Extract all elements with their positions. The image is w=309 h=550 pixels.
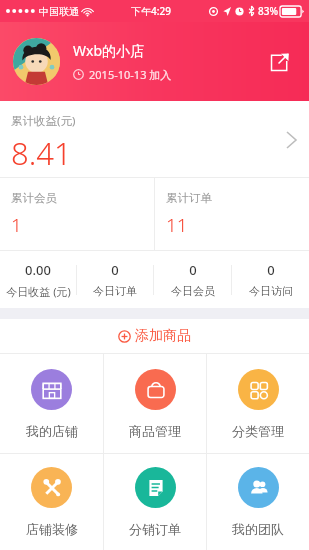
staticText: 中国联通 [39, 5, 79, 18]
staticText: 商品管理 [129, 423, 181, 439]
staticText: 今日收益 (元) [6, 284, 71, 299]
staticText: 11 [166, 212, 188, 238]
button[interactable]: 累计会员 [0, 178, 154, 250]
button[interactable]: 分类管理 [207, 354, 309, 453]
staticText: 我的团队 [232, 521, 284, 537]
button[interactable]: 商品管理 [104, 354, 206, 453]
staticText: 2015-10-13 加入 [89, 67, 172, 82]
staticText: 0.00 [25, 261, 51, 279]
button[interactable]: 分销订单 [104, 454, 206, 550]
staticText: 添加商品 [135, 327, 191, 345]
button[interactable]: 0.00 [0, 251, 76, 308]
button[interactable]: 0 [232, 251, 309, 308]
button[interactable]: 累计订单 [155, 178, 309, 250]
button[interactable]: 我的团队 [207, 454, 309, 550]
button[interactable]: 添加商品 [0, 319, 309, 353]
staticText: 1 [11, 212, 22, 238]
staticText: 分类管理 [232, 423, 284, 439]
staticText: 店铺装修 [26, 521, 78, 537]
staticText: 0 [111, 261, 119, 279]
button[interactable]: Avatar [13, 38, 60, 85]
staticText: 今日访问 [249, 284, 293, 298]
staticText: 今日会员 [171, 284, 215, 298]
button[interactable]: 0 [154, 251, 231, 308]
button[interactable]: 0 [77, 251, 153, 308]
staticText: 分销订单 [129, 521, 181, 537]
staticText: 83% [258, 4, 278, 18]
button[interactable]: Share [259, 42, 299, 82]
button[interactable]: 我的店铺 [0, 354, 103, 453]
staticText: 下午4:29 [131, 4, 171, 18]
staticText: 我的店铺 [26, 423, 78, 439]
staticText: 今日订单 [93, 284, 137, 298]
staticText: 累计订单 [166, 191, 212, 205]
staticText: Wxb的小店 [73, 41, 145, 60]
staticText: 0 [189, 261, 197, 279]
staticText: 累计会员 [11, 191, 57, 205]
button[interactable]: 店铺装修 [0, 454, 103, 550]
staticText: 0 [267, 261, 275, 279]
staticText: 8.41 [11, 132, 72, 174]
button[interactable]: 累计收益(元) [0, 101, 309, 178]
staticText: 累计收益(元) [11, 113, 76, 129]
